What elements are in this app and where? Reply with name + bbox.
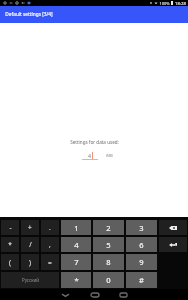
button[interactable]: 1 <box>61 220 91 235</box>
staticText: Settings for data used: <box>70 139 119 145</box>
staticText: Default settings [3/4] <box>5 11 53 18</box>
button[interactable]: Back <box>59 289 72 300</box>
button[interactable]: + <box>21 220 39 235</box>
staticText: * <box>8 240 12 249</box>
staticText: 4 <box>88 152 91 159</box>
staticText: # <box>139 275 144 285</box>
button[interactable]: Backspace <box>159 220 187 235</box>
staticText: - <box>9 223 12 232</box>
button[interactable]: Enter <box>159 237 187 252</box>
staticText: * <box>74 275 79 285</box>
button[interactable]: * <box>1 237 19 252</box>
staticText: 7 <box>74 257 79 267</box>
button[interactable]: , <box>41 237 59 252</box>
button[interactable]: ) <box>21 254 39 270</box>
staticText: , <box>49 240 51 249</box>
staticText: 100% <box>159 1 170 6</box>
button[interactable]: ( <box>1 254 19 270</box>
staticText: Русский <box>22 277 39 283</box>
staticText: 6 <box>139 240 144 250</box>
button[interactable]: # <box>126 272 157 288</box>
staticText: + <box>28 223 32 232</box>
staticText: 2 <box>106 223 111 233</box>
staticText: 0 <box>106 275 111 285</box>
staticText: 18:28 <box>175 0 186 6</box>
button[interactable]: 8 <box>93 254 124 270</box>
button[interactable]: . <box>41 220 59 235</box>
button[interactable]: 5 <box>93 237 124 252</box>
button[interactable]: * <box>61 272 91 288</box>
staticText: ) <box>29 258 31 267</box>
staticText: / <box>29 240 32 249</box>
staticText: ( <box>9 258 11 267</box>
button[interactable]: 9 <box>126 254 157 270</box>
staticText: 9 <box>139 257 144 267</box>
button[interactable]: Recent apps <box>117 289 130 300</box>
button[interactable]: 4 <box>61 237 91 252</box>
staticText: 8 <box>106 257 111 267</box>
button[interactable]: 7 <box>61 254 91 270</box>
staticText: 5 <box>106 240 111 250</box>
button[interactable]: - <box>1 220 19 235</box>
button[interactable]: 0 <box>93 272 124 288</box>
staticText: 4 <box>74 240 79 250</box>
button[interactable]: / <box>21 237 39 252</box>
staticText: . <box>49 223 51 232</box>
staticText: MB <box>106 153 113 159</box>
staticText: 3 <box>139 223 144 233</box>
staticText: = <box>48 258 52 267</box>
button[interactable]: 2 <box>93 220 124 235</box>
staticText: 1 <box>74 223 79 233</box>
button[interactable]: Русский <box>1 272 59 288</box>
button[interactable]: 3 <box>126 220 157 235</box>
button[interactable]: Home <box>88 289 101 300</box>
button[interactable]: 6 <box>126 237 157 252</box>
button[interactable]: = <box>41 254 59 270</box>
